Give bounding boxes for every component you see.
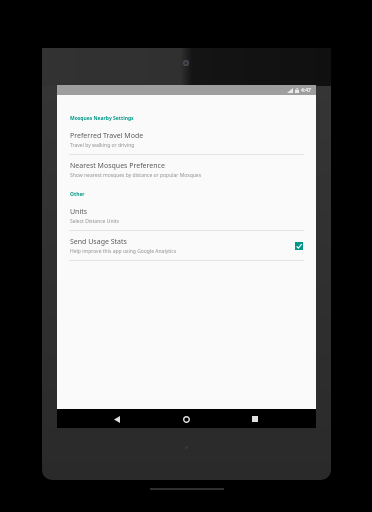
button[interactable]: Home — [178, 411, 194, 427]
button[interactable]: Send usage stats checkbox — [292, 239, 306, 253]
staticText: Select Distance Units — [70, 218, 119, 225]
button[interactable]: Preferred Travel Mode — [57, 129, 316, 151]
staticText: Other — [70, 191, 85, 198]
staticText: Help improve this app using Google Analy… — [70, 248, 177, 255]
staticText: 4:47 — [301, 87, 311, 94]
staticText: Preferred Travel Mode — [70, 131, 144, 141]
button[interactable]: Nearest Mosques Preference — [57, 159, 316, 181]
staticText: Mosques Nearby Settings — [70, 115, 134, 122]
staticText: Show nearest mosques by distance or popu… — [70, 172, 202, 179]
staticText: Send Usage Stats — [70, 237, 127, 247]
staticText: Nearest Mosques Preference — [70, 161, 165, 171]
staticText: Travel by walking or driving — [70, 142, 135, 149]
button[interactable]: Recent apps — [247, 411, 263, 427]
button[interactable]: Send Usage Stats — [57, 235, 316, 257]
button[interactable]: Units — [57, 205, 316, 227]
button[interactable]: Back — [109, 411, 125, 427]
staticText: Units — [70, 207, 88, 217]
